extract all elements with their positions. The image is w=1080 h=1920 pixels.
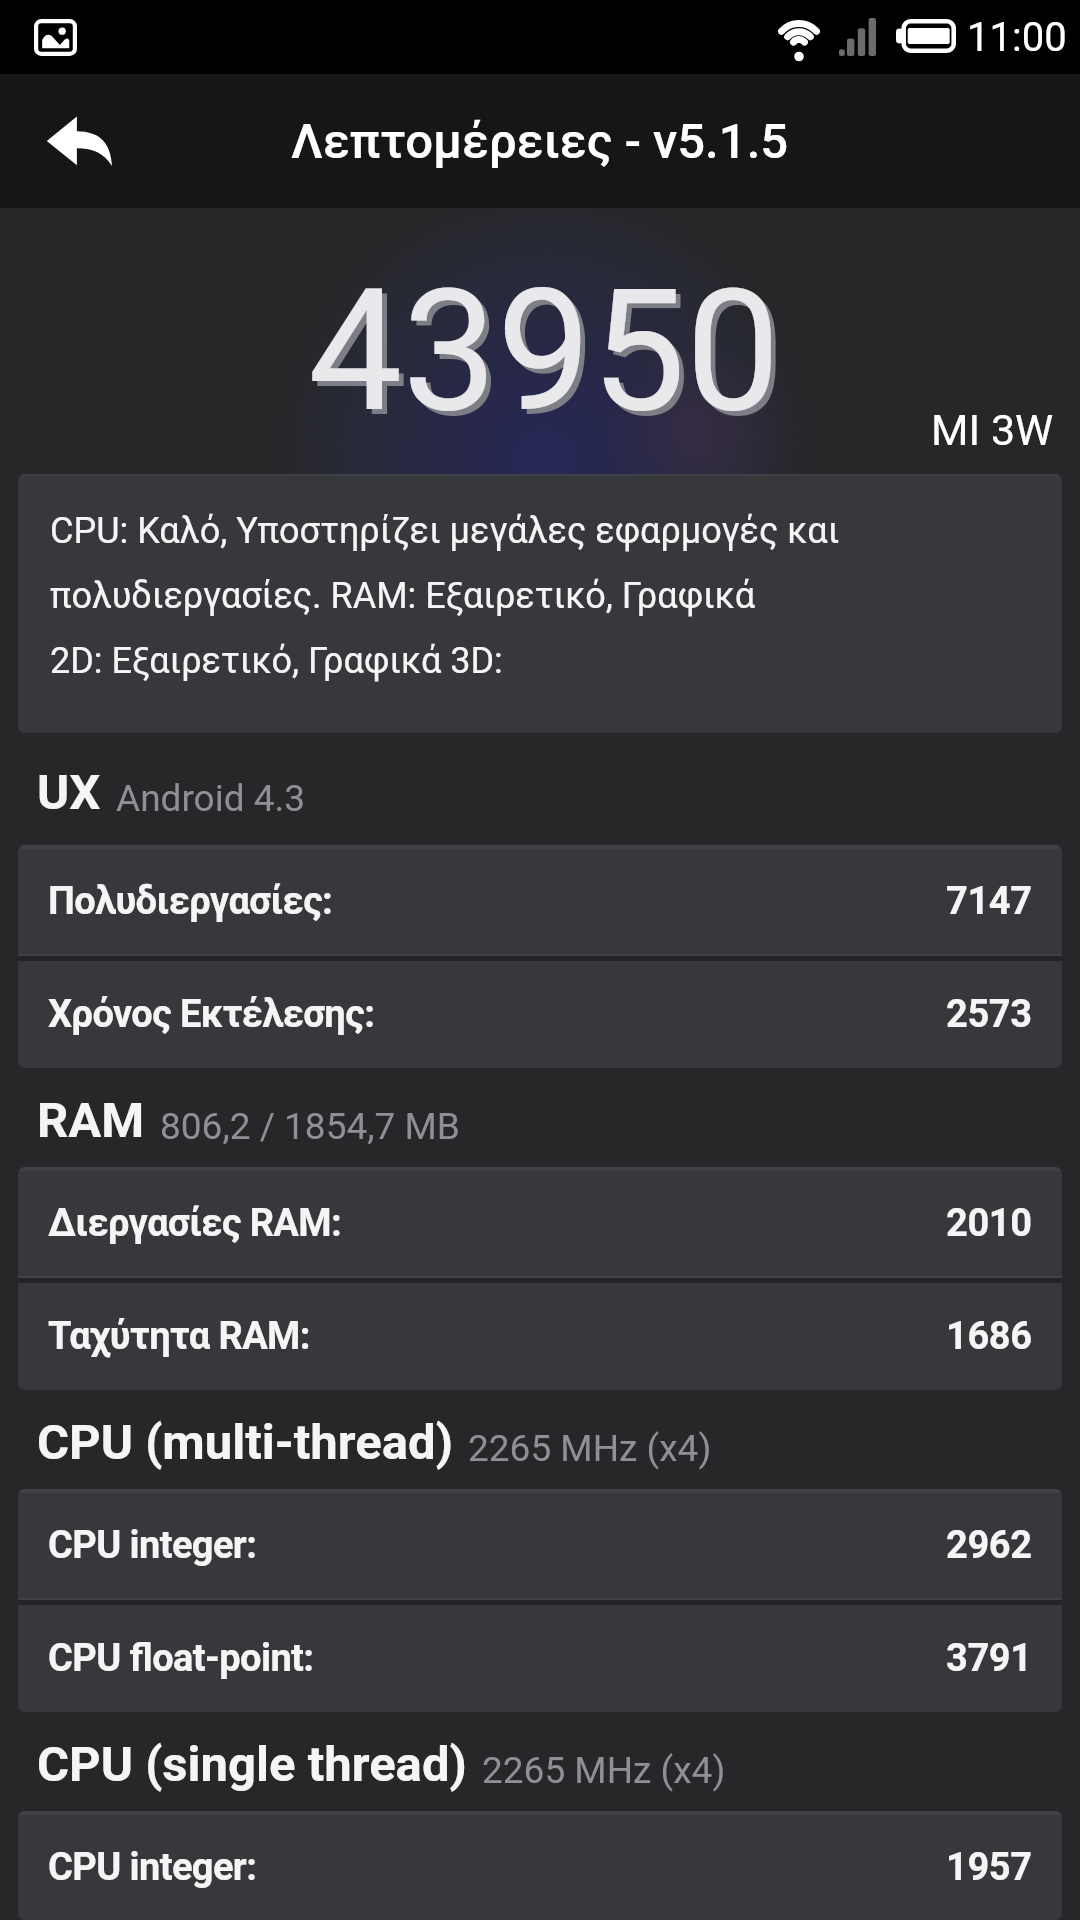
staticText: 1957	[946, 1845, 1032, 1890]
button[interactable]: Back	[24, 86, 134, 196]
button[interactable]: Χρόνος Εκτέλεσης:	[18, 961, 1062, 1068]
staticText: 806,2 / 1854,7 MB	[160, 1105, 460, 1148]
staticText: Πολυδιεργασίες:	[48, 879, 333, 924]
staticText: 11:00	[967, 14, 1067, 61]
staticText: 43950	[308, 253, 781, 450]
staticText: 2962	[946, 1523, 1032, 1568]
staticText: CPU integer:	[48, 1845, 257, 1890]
staticText: 2265 MHz (x4)	[468, 1427, 712, 1470]
staticText: Ταχύτητα RAM:	[48, 1314, 310, 1359]
staticText: CPU: Καλό, Υποστηρίζει μεγάλες εφαρμογές…	[50, 492, 840, 557]
staticText: Χρόνος Εκτέλεσης:	[48, 992, 375, 1037]
staticText: CPU (single thread)	[37, 1736, 467, 1793]
button[interactable]: CPU integer:	[18, 1815, 1062, 1920]
staticText: CPU float-point:	[48, 1636, 314, 1681]
button[interactable]: CPU float-point:	[18, 1605, 1062, 1712]
staticText: 3791	[946, 1636, 1032, 1681]
staticText: RAM	[37, 1092, 145, 1149]
staticText: 2265 MHz (x4)	[482, 1749, 726, 1792]
staticText: CPU (multi-thread)	[37, 1414, 453, 1471]
staticText: 2010	[946, 1201, 1032, 1246]
button[interactable]: Πολυδιεργασίες:	[18, 849, 1062, 954]
staticText: Λεπτομέρειες - v5.1.5	[291, 113, 789, 170]
other: Battery	[896, 19, 956, 53]
button[interactable]: Διεργασίες RAM:	[18, 1171, 1062, 1276]
staticText: 2D: Εξαιρετικό, Γραφικά 3D:	[50, 622, 503, 687]
other: Wi-Fi	[770, 14, 828, 62]
staticText: 7147	[946, 879, 1032, 924]
staticText: Διεργασίες RAM:	[48, 1201, 342, 1246]
staticText: 1686	[946, 1314, 1032, 1359]
other: Mobile signal	[839, 18, 879, 56]
staticText: 43950	[313, 258, 786, 455]
staticText: Android 4.3	[116, 777, 306, 820]
other: Screenshot saved	[34, 19, 77, 56]
button[interactable]: Ταχύτητα RAM:	[18, 1283, 1062, 1390]
staticText: MI 3W	[931, 405, 1054, 455]
staticText: UX	[37, 764, 101, 821]
staticText: CPU integer:	[48, 1523, 257, 1568]
staticText: πολυδιεργασίες. RAM: Εξαιρετικό, Γραφικά	[50, 557, 756, 622]
staticText: 2573	[946, 992, 1032, 1037]
button[interactable]: CPU integer:	[18, 1493, 1062, 1598]
